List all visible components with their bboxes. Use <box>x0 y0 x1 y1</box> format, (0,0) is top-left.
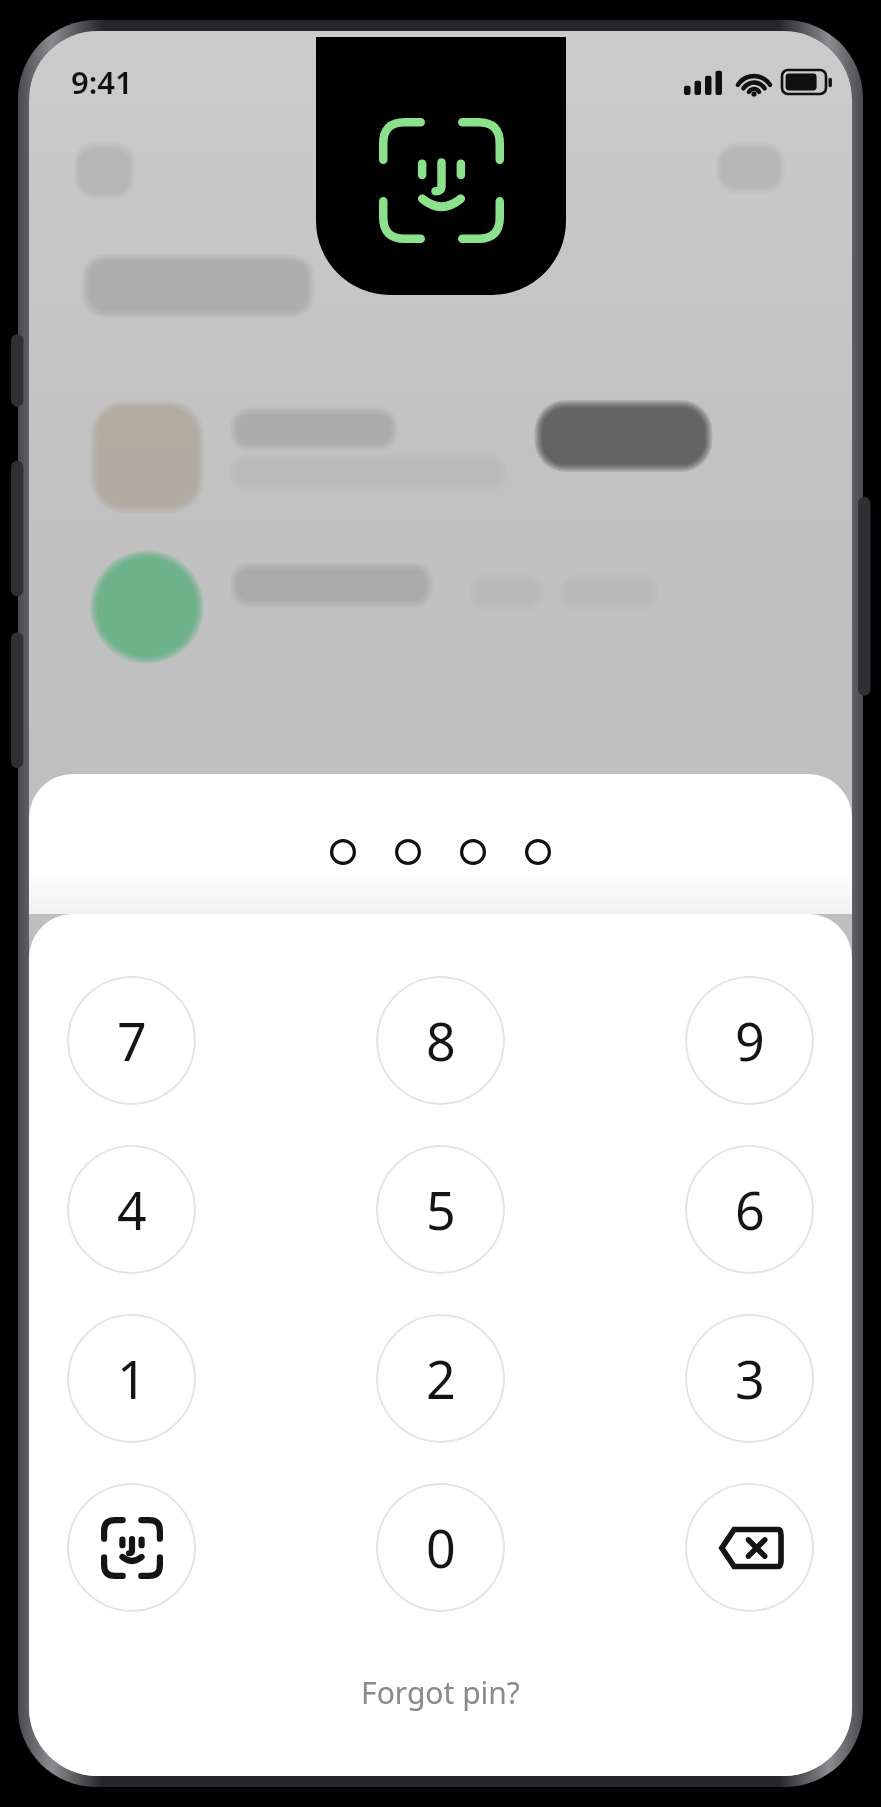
staticText: 8 <box>426 1005 456 1076</box>
button[interactable]: 8 <box>376 976 505 1105</box>
button[interactable]: Unlock with Face ID <box>67 1483 196 1612</box>
staticText: 3 <box>735 1343 765 1414</box>
staticText: 4 <box>117 1174 147 1245</box>
button[interactable]: 7 <box>67 976 196 1105</box>
staticText: 0 <box>426 1512 456 1583</box>
button[interactable]: 6 <box>685 1145 814 1274</box>
staticText: 5 <box>426 1174 456 1245</box>
button[interactable]: Delete <box>685 1483 814 1612</box>
button[interactable]: 1 <box>67 1314 196 1443</box>
staticText: 2 <box>426 1343 456 1414</box>
button[interactable]: 3 <box>685 1314 814 1443</box>
staticText: 9:41 <box>71 61 133 103</box>
button[interactable]: 4 <box>67 1145 196 1274</box>
staticText: 1 <box>117 1343 147 1414</box>
button[interactable]: 0 <box>376 1483 505 1612</box>
staticText: 9 <box>735 1005 765 1076</box>
button[interactable]: Forgot pin? <box>341 1662 540 1723</box>
button[interactable]: 2 <box>376 1314 505 1443</box>
button[interactable]: 9 <box>685 976 814 1105</box>
staticText: 7 <box>117 1005 147 1076</box>
staticText: 6 <box>735 1174 765 1245</box>
button[interactable]: 5 <box>376 1145 505 1274</box>
